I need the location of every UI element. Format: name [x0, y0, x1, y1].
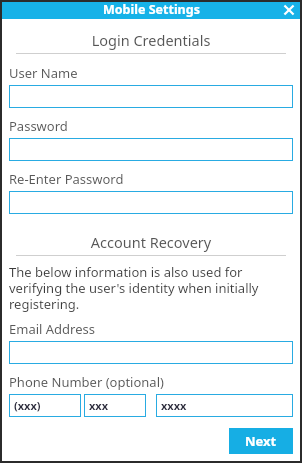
staticText: Mobile Settings	[103, 1, 200, 18]
staticText: Next	[245, 432, 277, 450]
staticText: Email Address	[9, 320, 95, 338]
staticText: (xxx)	[14, 398, 41, 413]
button[interactable]: Next	[229, 428, 293, 454]
staticText: The below information is also used for v…	[9, 263, 293, 312]
button[interactable]	[9, 191, 293, 214]
staticText: Account Recovery	[9, 232, 293, 252]
staticText: Re-Enter Password	[9, 170, 124, 188]
staticText: User Name	[9, 64, 78, 82]
staticText: Password	[9, 117, 68, 135]
staticText: Login Credentials	[9, 30, 293, 50]
button[interactable]: xxxx	[156, 394, 293, 417]
button[interactable]: xxx	[84, 394, 146, 417]
button[interactable]: (xxx)	[9, 394, 81, 417]
staticText: xxxx	[161, 398, 187, 413]
button[interactable]	[9, 341, 293, 364]
button[interactable]: Close	[280, 1, 298, 19]
button[interactable]	[9, 138, 293, 161]
staticText: Phone Number (optional)	[9, 373, 164, 391]
button[interactable]	[9, 85, 293, 108]
staticText: xxx	[89, 398, 109, 413]
